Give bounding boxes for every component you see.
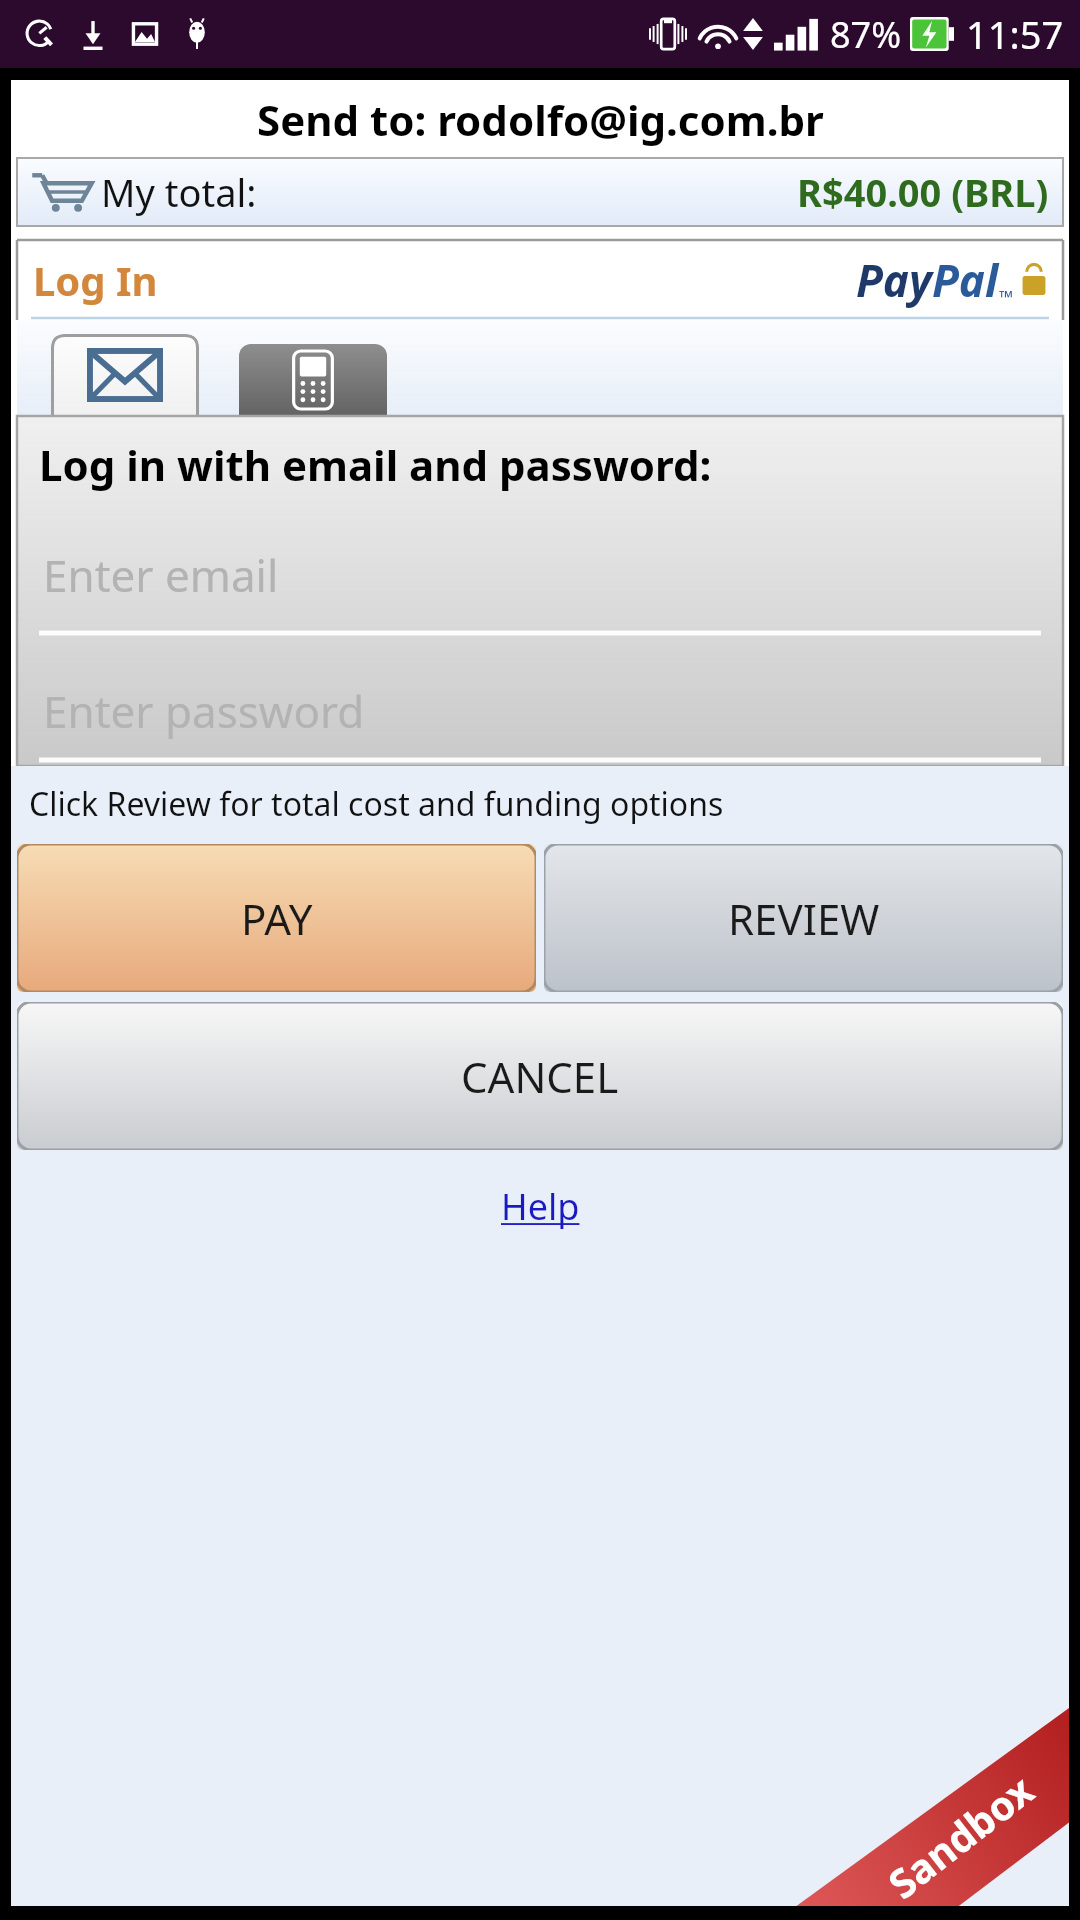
button[interactable]: REVIEW (544, 844, 1063, 992)
staticText: My total: (101, 166, 257, 218)
staticText: Pal (932, 250, 999, 310)
button[interactable]: Log in with phone (239, 344, 387, 416)
staticText: Log in with email and password: (39, 436, 712, 493)
staticText: 11:57 (966, 8, 1064, 60)
button[interactable]: Log in with email (51, 334, 199, 416)
staticText: R$40.00 (BRL) (797, 166, 1049, 218)
button[interactable]: Enter password (17, 665, 1063, 766)
staticText: Log In (33, 253, 158, 307)
staticText: Pay (856, 250, 932, 310)
staticText: 87% (830, 10, 902, 59)
button[interactable]: PAY (17, 844, 536, 992)
button[interactable]: Help (485, 1176, 596, 1237)
staticText: PAY (241, 890, 313, 947)
staticText: CANCEL (461, 1048, 619, 1105)
staticText: Send to: rodolfo@ig.com.br (257, 91, 824, 148)
staticText: Enter password (43, 681, 365, 741)
staticText: Enter email (43, 545, 279, 605)
button[interactable]: Enter email (17, 521, 1063, 639)
staticText: ™ (999, 285, 1013, 310)
staticText: Sandbox (875, 1809, 1045, 1863)
staticText: Click Review for total cost and funding … (29, 782, 724, 826)
staticText: Help (501, 1182, 580, 1231)
button[interactable]: CANCEL (17, 1002, 1063, 1150)
staticText: REVIEW (728, 890, 880, 947)
